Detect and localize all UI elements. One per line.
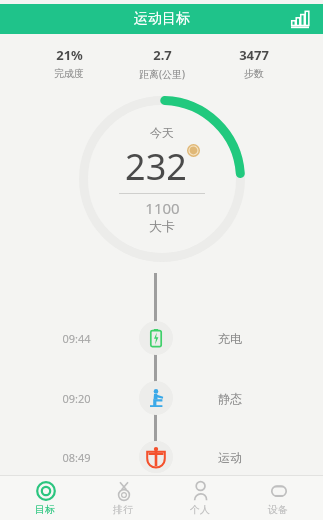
button[interactable]: 3477 bbox=[233, 44, 275, 82]
button[interactable]: 08:49 bbox=[0, 441, 323, 473]
button[interactable]: 目标 bbox=[12, 477, 78, 519]
staticText: 3477 bbox=[239, 46, 269, 64]
staticText: 设备 bbox=[268, 503, 288, 516]
button[interactable]: 21% bbox=[48, 44, 90, 82]
staticText: 09:20 bbox=[62, 391, 91, 406]
button[interactable]: 设备 bbox=[245, 477, 311, 519]
staticText: 21% bbox=[56, 46, 83, 64]
staticText: 09:44 bbox=[62, 331, 91, 346]
button[interactable]: 排行 bbox=[90, 477, 156, 519]
button[interactable]: Statistics bbox=[287, 6, 313, 32]
staticText: 完成度 bbox=[54, 67, 84, 80]
staticText: 运动目标 bbox=[134, 10, 190, 28]
button[interactable]: 09:20 bbox=[0, 381, 323, 415]
staticText: 232 bbox=[125, 142, 187, 191]
staticText: 距离(公里) bbox=[139, 67, 185, 81]
button[interactable]: 2.7 bbox=[133, 44, 191, 83]
staticText: 静态 bbox=[218, 391, 242, 406]
staticText: 个人 bbox=[190, 503, 210, 516]
staticText: 充电 bbox=[218, 331, 242, 346]
staticText: 步数 bbox=[244, 67, 264, 80]
staticText: 1100 bbox=[145, 198, 180, 218]
staticText: 大卡 bbox=[149, 218, 175, 234]
button[interactable]: 个人 bbox=[167, 477, 233, 519]
staticText: 运动 bbox=[218, 450, 242, 465]
staticText: 目标 bbox=[35, 503, 55, 516]
staticText: 今天 bbox=[150, 125, 174, 140]
staticText: 2.7 bbox=[153, 46, 172, 64]
staticText: 08:49 bbox=[62, 450, 91, 465]
staticText: 排行 bbox=[113, 503, 133, 516]
button[interactable]: 09:44 bbox=[0, 321, 323, 355]
button[interactable]: 今天 bbox=[119, 125, 205, 234]
